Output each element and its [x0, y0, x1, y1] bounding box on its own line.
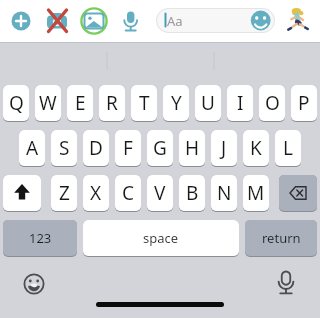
staticText: V [154, 180, 166, 206]
staticText: U [201, 90, 215, 116]
button[interactable]: K [243, 130, 269, 167]
button[interactable]: T [131, 85, 157, 122]
staticText: return [262, 229, 301, 247]
button[interactable] [120, 8, 142, 32]
button[interactable]: X [83, 175, 109, 212]
staticText: G [153, 135, 167, 161]
staticText: E [75, 90, 86, 116]
button[interactable]: O [259, 85, 285, 122]
button[interactable]: Z [51, 175, 77, 212]
button[interactable]: R [99, 85, 125, 122]
button[interactable]: J [211, 130, 237, 167]
button[interactable]: W [35, 85, 61, 122]
button[interactable]: P [291, 85, 317, 122]
button[interactable]: A [19, 130, 45, 167]
staticText: F [123, 135, 133, 161]
staticText: P [298, 90, 310, 116]
staticText: S [59, 135, 70, 161]
button[interactable]: Aa [156, 8, 275, 33]
button[interactable]: U [195, 85, 221, 122]
staticText: O [265, 90, 280, 116]
staticText: B [186, 180, 199, 206]
staticText: D [89, 135, 103, 161]
button[interactable]: I [227, 85, 253, 122]
staticText: W [39, 90, 57, 116]
staticText: M [247, 180, 265, 206]
button[interactable]: Q [3, 85, 29, 122]
button[interactable]: space [83, 220, 239, 257]
staticText: K [250, 135, 262, 161]
staticText: 123 [29, 229, 52, 247]
staticText: N [217, 180, 232, 206]
button[interactable]: S [51, 130, 77, 167]
button[interactable]: H [179, 130, 205, 167]
staticText: R [106, 90, 118, 116]
button[interactable] [80, 7, 108, 35]
button[interactable] [288, 6, 312, 34]
staticText: Aa [167, 12, 183, 30]
staticText: X [90, 180, 102, 206]
staticText: L [283, 135, 293, 161]
button[interactable]: C [115, 175, 141, 212]
staticText: Y [171, 90, 182, 116]
button[interactable] [46, 10, 68, 32]
button[interactable]: F [115, 130, 141, 167]
button[interactable]: D [83, 130, 109, 167]
staticText: H [185, 135, 200, 161]
staticText: Q [9, 90, 24, 116]
staticText: Z [59, 180, 70, 206]
button[interactable]: V [147, 175, 173, 212]
button[interactable]: Y [163, 85, 189, 122]
button[interactable] [22, 272, 46, 296]
button[interactable]: M [243, 175, 269, 212]
button[interactable]: 123 [3, 220, 77, 257]
button[interactable] [279, 175, 317, 212]
button[interactable]: B [179, 175, 205, 212]
staticText: space [143, 229, 179, 247]
button[interactable] [3, 175, 41, 212]
staticText: A [26, 135, 39, 161]
button[interactable]: N [211, 175, 237, 212]
staticText: T [139, 90, 150, 116]
button[interactable] [10, 10, 32, 32]
button[interactable] [274, 270, 298, 296]
staticText: J [221, 135, 227, 161]
button[interactable]: L [275, 130, 301, 167]
staticText: I [237, 90, 244, 116]
staticText: C [122, 180, 135, 206]
button[interactable]: return [245, 220, 317, 257]
button[interactable]: E [67, 85, 93, 122]
button[interactable]: G [147, 130, 173, 167]
